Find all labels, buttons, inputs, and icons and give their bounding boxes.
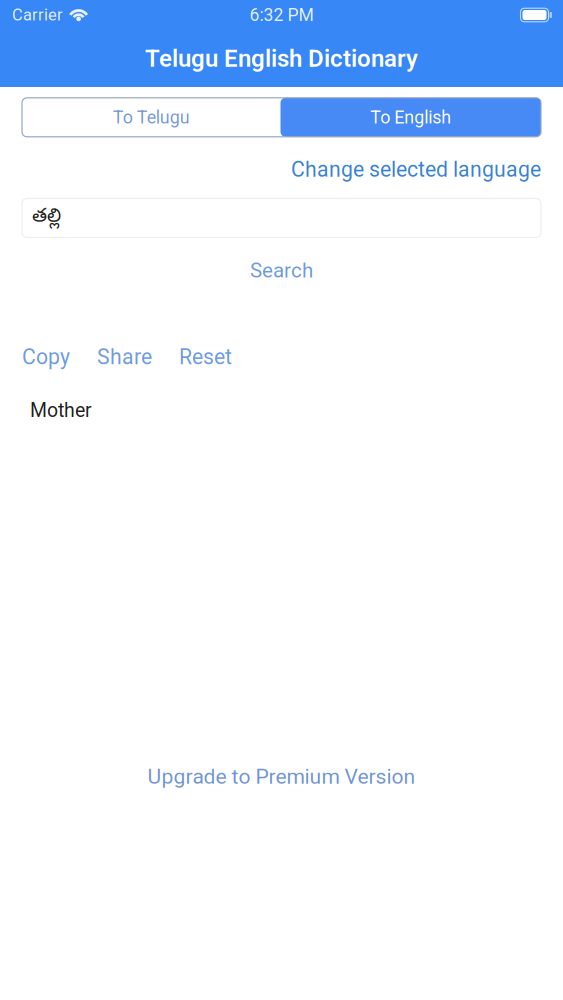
- staticText: Mother: [30, 399, 92, 422]
- staticText: Search: [250, 258, 313, 282]
- staticText: Telugu English Dictionary: [145, 44, 418, 72]
- button[interactable]: To Telugu: [22, 98, 280, 137]
- staticText: Upgrade to Premium Version: [147, 764, 415, 789]
- button[interactable]: Reset: [179, 344, 232, 369]
- staticText: తల్లి: [32, 205, 61, 231]
- staticText: To Telugu: [113, 107, 190, 128]
- button[interactable]: To English: [280, 98, 541, 137]
- staticText: Carrier: [12, 5, 63, 25]
- staticText: Share: [97, 344, 152, 369]
- button[interactable]: Share: [97, 344, 152, 369]
- staticText: Change selected language: [291, 157, 541, 182]
- staticText: To English: [370, 107, 451, 128]
- staticText: Reset: [179, 344, 232, 369]
- staticText: Copy: [22, 344, 70, 369]
- button[interactable]: Search: [250, 258, 313, 282]
- staticText: 6:32 PM: [249, 5, 313, 25]
- button[interactable]: Upgrade to Premium Version: [147, 764, 415, 789]
- button[interactable]: Copy: [22, 344, 70, 369]
- button[interactable]: Change selected language: [22, 157, 541, 182]
